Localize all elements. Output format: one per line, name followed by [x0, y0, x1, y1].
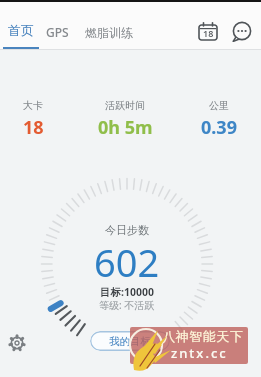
staticText: 602 [94, 236, 160, 288]
button[interactable]: 燃脂训练 [85, 25, 137, 45]
button[interactable] [230, 20, 254, 44]
staticText: 等级: 不活跃 [99, 298, 155, 312]
staticText: 公里 [209, 99, 229, 112]
staticText: 燃脂训练 [85, 25, 133, 40]
button[interactable]: 我的目标 [90, 331, 170, 351]
staticText: 目标:10000 [100, 285, 154, 299]
staticText: zntx.cc [171, 344, 228, 362]
staticText: 活跃时间 [105, 99, 145, 112]
staticText: 我的目标 [109, 335, 151, 348]
staticText: 18 [203, 27, 214, 39]
button[interactable]: 18 [197, 21, 219, 43]
button[interactable]: 首页 [2, 22, 40, 45]
staticText: 今日步数 [105, 223, 149, 237]
button[interactable] [7, 333, 27, 353]
staticText: 0h 5m [98, 115, 153, 140]
staticText: 0.39 [201, 115, 237, 140]
button[interactable]: GPS [46, 24, 76, 44]
staticText: 18 [23, 115, 44, 140]
staticText: 八神智能天下 [162, 328, 243, 344]
staticText: 大卡 [23, 99, 43, 112]
staticText: 首页 [8, 22, 34, 38]
staticText: GPS [46, 24, 69, 40]
